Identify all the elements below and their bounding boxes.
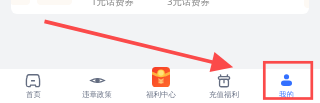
button[interactable]: Benefits center	[129, 69, 192, 103]
staticText: 3元话费券	[158, 0, 219, 8]
button[interactable]: Violation policy	[65, 69, 129, 103]
staticText: 1元话费券	[82, 0, 143, 8]
staticText: 首页	[26, 90, 41, 99]
staticText: 我的	[279, 90, 294, 99]
staticText: 福利中心	[146, 90, 176, 99]
button[interactable]: 3元话费券	[158, 0, 219, 8]
button[interactable]: Recharge benefits	[192, 69, 255, 103]
staticText: 充值福利	[209, 90, 239, 99]
button[interactable]: Mine	[255, 69, 318, 103]
button[interactable]: Home	[1, 69, 65, 103]
staticText: 违章政策	[82, 90, 112, 99]
button[interactable]: 1元话费券	[82, 0, 143, 8]
